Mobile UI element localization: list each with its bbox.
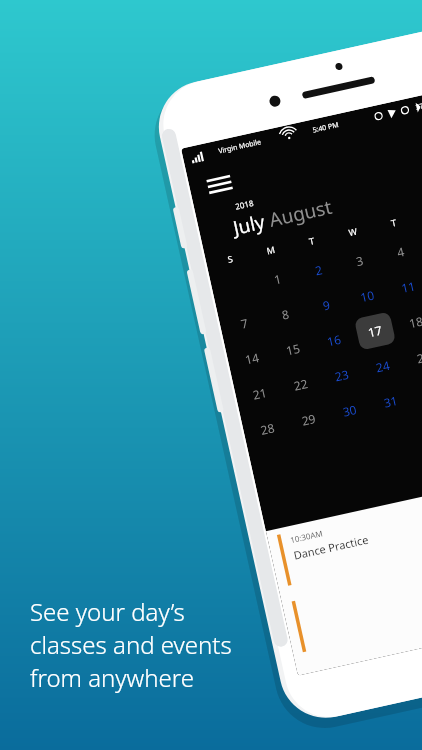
staticText: classes and events <box>30 628 232 661</box>
button[interactable]: See your day’s <box>30 595 232 694</box>
staticText: See your day’s <box>30 595 185 628</box>
staticText: from anywhere <box>30 661 195 694</box>
